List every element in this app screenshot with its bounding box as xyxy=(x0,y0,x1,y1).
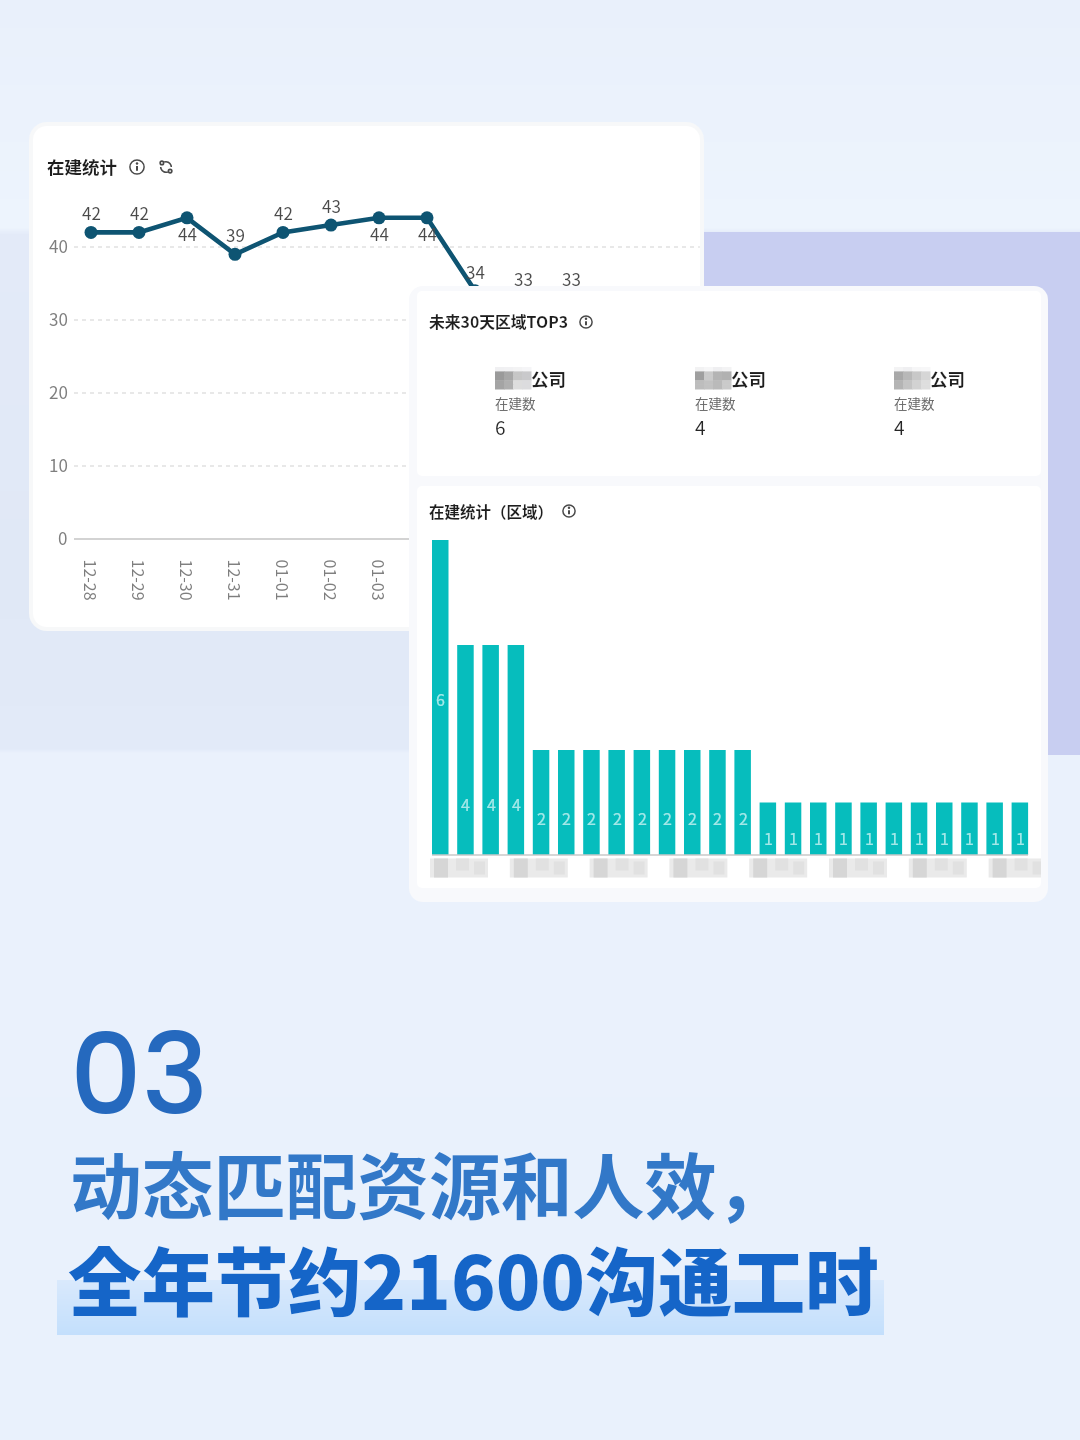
staticText: 20 xyxy=(49,379,68,404)
staticText: 在建统计 xyxy=(47,154,117,179)
staticText: 在建数 xyxy=(495,393,536,413)
staticText: 0 xyxy=(58,525,68,550)
staticText: 1 xyxy=(1016,826,1025,849)
staticText: 1 xyxy=(839,826,848,849)
staticText: 2 xyxy=(739,806,748,829)
staticText: 2 xyxy=(638,806,647,829)
staticText: 4 xyxy=(487,792,496,815)
staticText: 12-31 xyxy=(223,559,246,601)
staticText: 01-03 xyxy=(367,559,390,601)
staticText: 未来30天区域TOP3 xyxy=(429,310,569,333)
staticText: 2 xyxy=(613,806,622,829)
staticText: 40 xyxy=(49,233,68,258)
staticText: 12-30 xyxy=(175,559,198,601)
staticText: 39 xyxy=(226,222,245,247)
staticText: 1 xyxy=(789,826,798,849)
other: Info xyxy=(562,504,576,518)
staticText: 44 xyxy=(418,221,437,246)
staticText: 全年节约21600沟通工时 xyxy=(68,1225,879,1331)
other: Info xyxy=(579,315,593,329)
staticText: 2 xyxy=(713,806,722,829)
staticText: 43 xyxy=(322,193,341,218)
staticText: 01-01 xyxy=(271,559,294,601)
staticText: 42 xyxy=(274,200,293,225)
staticText: 2 xyxy=(587,806,596,829)
staticText: 公司 xyxy=(731,366,766,391)
staticText: 1 xyxy=(865,826,874,849)
staticText: 4 xyxy=(894,413,905,441)
staticText: 2 xyxy=(537,806,546,829)
other: Refresh xyxy=(158,159,174,175)
staticText: 42 xyxy=(130,200,149,225)
staticText: 34 xyxy=(466,259,485,284)
staticText: 1 xyxy=(965,826,974,849)
staticText: 10 xyxy=(49,452,68,477)
staticText: 44 xyxy=(178,221,197,246)
staticText: 44 xyxy=(370,221,389,246)
staticText: 30 xyxy=(49,306,68,331)
staticText: 42 xyxy=(82,200,101,225)
staticText: 动态匹配资源和人效， xyxy=(70,1130,788,1234)
staticText: 01-02 xyxy=(319,559,342,601)
staticText: 1 xyxy=(764,826,773,849)
staticText: 1 xyxy=(991,826,1000,849)
staticText: 6 xyxy=(495,413,506,441)
staticText: 在建数 xyxy=(894,393,935,413)
staticText: 1 xyxy=(890,826,899,849)
staticText: 1 xyxy=(940,826,949,849)
staticText: 1 xyxy=(814,826,823,849)
button[interactable]: 在建统计 xyxy=(33,126,700,627)
staticText: 在建数 xyxy=(695,393,736,413)
staticText: 2 xyxy=(663,806,672,829)
staticText: 1 xyxy=(915,826,924,849)
staticText: 在建统计（区域） xyxy=(429,500,554,522)
staticText: 2 xyxy=(562,806,571,829)
staticText: 4 xyxy=(461,792,470,815)
other: Info xyxy=(129,159,145,175)
button[interactable]: 未来30天区域TOP3 xyxy=(417,291,1041,476)
staticText: 12-29 xyxy=(127,559,150,601)
staticText: 33 xyxy=(562,266,581,291)
staticText: 6 xyxy=(436,687,445,710)
staticText: 4 xyxy=(695,413,706,441)
staticText: 12-28 xyxy=(79,559,102,601)
staticText: 4 xyxy=(512,792,521,815)
staticText: 公司 xyxy=(930,366,965,391)
staticText: 33 xyxy=(514,266,533,291)
staticText: 公司 xyxy=(531,366,566,391)
staticText: 03 xyxy=(70,996,209,1153)
button[interactable]: 在建统计（区域） xyxy=(417,486,1041,888)
staticText: 2 xyxy=(688,806,697,829)
